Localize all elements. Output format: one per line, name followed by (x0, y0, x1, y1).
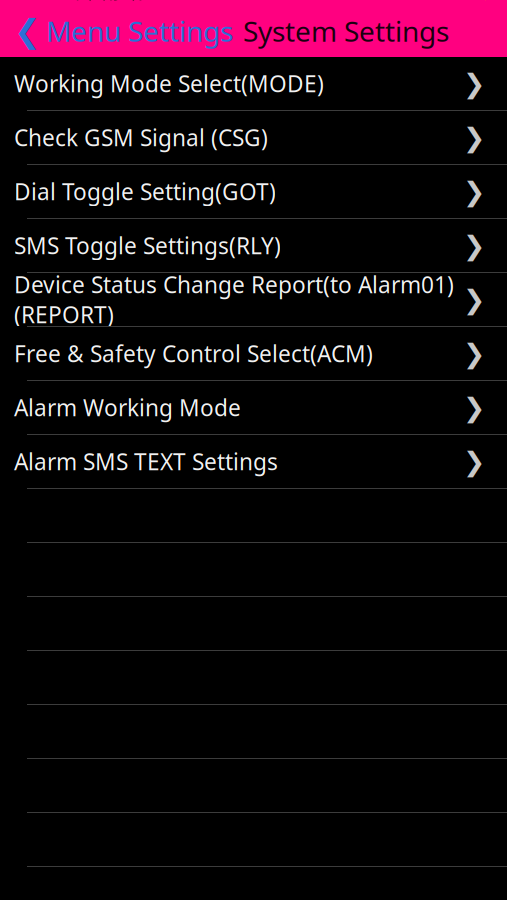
staticText: ❯ (463, 122, 485, 153)
staticText: ❯ (463, 338, 485, 369)
staticText: Device Status Change Report(to Alarm01)(… (14, 269, 454, 330)
staticText: Check GSM Signal (CSG) (14, 122, 268, 152)
staticText: ❯ (463, 230, 485, 261)
button[interactable]: Dial Toggle Setting(GOT) (0, 165, 507, 219)
staticText: ❮ (14, 13, 41, 49)
button[interactable]: Check GSM Signal (CSG) (0, 111, 507, 165)
button[interactable]: Alarm SMS TEXT Settings (0, 435, 507, 489)
button[interactable]: ❮ (0, 4, 233, 58)
staticText: ❯ (463, 284, 485, 315)
staticText: Free & Safety Control Select(ACM) (14, 338, 373, 368)
button[interactable]: Device Status Change Report(to Alarm01)(… (0, 273, 507, 327)
staticText: 中国移动 (69, 0, 145, 3)
staticText: ❯ (463, 68, 485, 99)
staticText: ❯ (463, 446, 485, 477)
button[interactable]: Free & Safety Control Select(ACM) (0, 327, 507, 381)
staticText: Alarm Working Mode (14, 392, 241, 422)
staticText: ❯ (463, 392, 485, 423)
staticText: ❯ (463, 176, 485, 207)
staticText: Menu Settings (46, 12, 233, 50)
staticText: Working Mode Select(MODE) (14, 68, 324, 98)
button[interactable]: Working Mode Select(MODE) (0, 57, 507, 111)
staticText: System Settings (243, 12, 449, 50)
button[interactable]: SMS Toggle Settings(RLY) (0, 219, 507, 273)
staticText: SMS Toggle Settings(RLY) (14, 230, 281, 260)
staticText: Alarm SMS TEXT Settings (14, 446, 278, 476)
staticText: Dial Toggle Setting(GOT) (14, 176, 276, 206)
button[interactable]: Alarm Working Mode (0, 381, 507, 435)
